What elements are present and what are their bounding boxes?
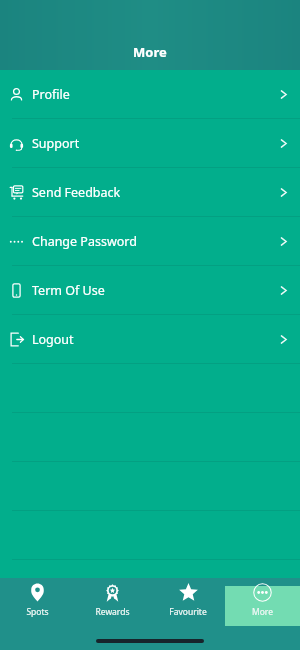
staticText: More: [133, 43, 167, 61]
staticText: Send Feedback: [32, 184, 121, 201]
button[interactable]: Support: [0, 119, 300, 167]
button[interactable]: Profile: [0, 70, 300, 118]
staticText: More: [252, 606, 273, 618]
button[interactable]: Send Feedback: [0, 168, 300, 216]
staticText: Support: [32, 135, 80, 152]
staticText: Rewards: [95, 606, 130, 618]
staticText: Change Password: [32, 233, 137, 250]
button[interactable]: Change Password: [0, 217, 300, 265]
staticText: Logout: [32, 331, 74, 348]
button[interactable]: Rewards: [75, 578, 150, 634]
staticText: Profile: [32, 86, 70, 103]
button[interactable]: Spots: [0, 578, 75, 634]
staticText: Term Of Use: [32, 282, 105, 299]
staticText: Spots: [26, 606, 49, 618]
button[interactable]: More: [225, 578, 300, 634]
button[interactable]: Term Of Use: [0, 266, 300, 314]
button[interactable]: Favourite: [150, 578, 225, 634]
button[interactable]: Logout: [0, 315, 300, 363]
staticText: Favourite: [169, 606, 207, 618]
